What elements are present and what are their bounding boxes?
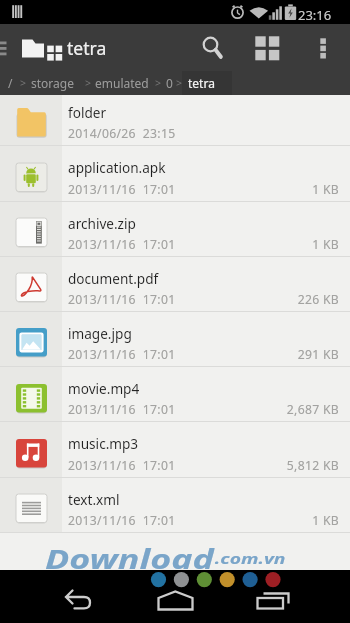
staticText: 2013/11/16 17:01	[68, 401, 176, 418]
staticText: image.jpg	[68, 324, 132, 343]
staticText: 2013/11/16 17:01	[68, 291, 176, 308]
button[interactable]	[192, 24, 232, 71]
staticText: >	[155, 76, 162, 90]
staticText: >	[20, 76, 27, 90]
staticText: text.xml	[68, 490, 120, 509]
staticText: 23:16	[298, 6, 332, 24]
staticText: 2013/11/16 17:01	[68, 346, 176, 363]
button[interactable]	[245, 24, 285, 71]
button[interactable]	[0, 367, 350, 422]
staticText: .com.vn	[215, 549, 286, 568]
button[interactable]	[0, 478, 350, 533]
staticText: 2014/06/26 23:15	[68, 125, 176, 142]
staticText: 5,812 KB	[286, 457, 339, 473]
button[interactable]	[240, 585, 310, 620]
staticText: application.apk	[68, 158, 166, 177]
button[interactable]: storage	[31, 75, 74, 91]
button[interactable]	[0, 94, 350, 146]
staticText: 2013/11/16 17:01	[68, 512, 176, 529]
button[interactable]	[0, 146, 350, 201]
staticText: >	[176, 76, 183, 90]
staticText: 2013/11/16 17:01	[68, 457, 176, 474]
staticText: 291 KB	[297, 346, 339, 362]
staticText: folder	[68, 103, 107, 122]
staticText: movie.mp4	[68, 379, 140, 398]
button[interactable]	[305, 24, 350, 71]
staticText: 1 KB	[312, 181, 339, 197]
staticText: 1 KB	[312, 512, 339, 528]
button[interactable]	[40, 585, 110, 620]
staticText: 2,687 KB	[286, 401, 339, 417]
staticText: music.mp3	[68, 434, 139, 453]
staticText: >	[85, 76, 92, 90]
staticText: /	[8, 75, 13, 91]
button[interactable]	[0, 257, 350, 312]
staticText: Download	[45, 541, 215, 571]
staticText: 1 KB	[312, 236, 339, 252]
button[interactable]	[0, 422, 350, 477]
button[interactable]: emulated	[95, 75, 149, 91]
staticText: 226 KB	[297, 291, 339, 307]
button[interactable]: 0	[166, 75, 173, 91]
button[interactable]	[0, 24, 120, 71]
staticText: 2013/11/16 17:01	[68, 181, 176, 198]
button[interactable]	[0, 202, 350, 257]
button[interactable]	[140, 585, 210, 620]
staticText: document.pdf	[68, 269, 159, 288]
staticText: 2013/11/16 17:01	[68, 236, 176, 253]
staticText: archive.zip	[68, 214, 136, 233]
button[interactable]	[0, 312, 350, 367]
button[interactable]: tetra	[188, 75, 215, 91]
staticText: tetra	[67, 36, 107, 60]
